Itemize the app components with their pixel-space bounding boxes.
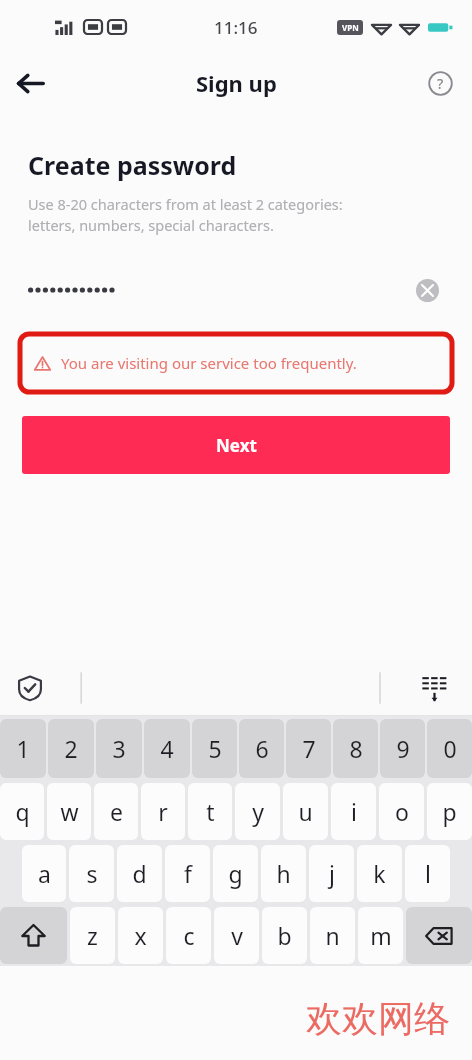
button[interactable]: s [69, 845, 114, 902]
staticText: w [60, 796, 79, 827]
button[interactable]: 4 [144, 719, 190, 778]
button[interactable]: v [214, 907, 259, 964]
staticText: VPN [342, 22, 359, 33]
button[interactable]: Next [22, 416, 450, 474]
staticText: 5 [208, 733, 222, 764]
button[interactable]: u [283, 783, 328, 840]
staticText: 1 [16, 733, 30, 764]
button[interactable]: Secure input [8, 666, 52, 710]
staticText: u [298, 796, 313, 827]
staticText: t [206, 796, 215, 827]
staticText: f [184, 858, 192, 889]
staticText: ? [437, 74, 444, 93]
button[interactable]: n [310, 907, 355, 964]
button[interactable]: d [117, 845, 162, 902]
button[interactable]: g [213, 845, 258, 902]
staticText: h [276, 858, 291, 889]
button[interactable]: i [331, 783, 376, 840]
staticText: k [373, 858, 386, 889]
button[interactable]: k [357, 845, 402, 902]
button[interactable]: l [405, 845, 450, 902]
staticText: m [370, 920, 392, 951]
staticText: 9 [396, 733, 410, 764]
staticText: 6 [255, 733, 269, 764]
staticText: o [395, 796, 409, 827]
staticText: d [132, 858, 147, 889]
staticText: a [38, 858, 51, 889]
staticText: b [277, 920, 292, 951]
staticText: 4 [160, 733, 174, 764]
staticText: n [325, 920, 340, 951]
button[interactable]: 3 [96, 719, 142, 778]
button[interactable]: 0 [427, 719, 472, 778]
button[interactable]: Back [6, 59, 54, 107]
button[interactable]: 6 [239, 719, 284, 778]
button[interactable]: h [261, 845, 306, 902]
button[interactable]: z [70, 907, 115, 964]
staticText: Use 8-20 characters from at least 2 cate… [28, 194, 343, 236]
button[interactable]: t [188, 783, 232, 840]
staticText: Sign up [196, 68, 277, 98]
staticText: 8 [349, 733, 363, 764]
button[interactable]: p [427, 783, 472, 840]
button[interactable]: o [379, 783, 424, 840]
staticText: You are visiting our service too frequen… [61, 353, 357, 373]
button[interactable]: f [165, 845, 210, 902]
staticText: v [231, 920, 243, 951]
button[interactable]: 9 [380, 719, 425, 778]
staticText: j [329, 858, 335, 889]
staticText: Create password [28, 148, 237, 182]
button[interactable]: 5 [192, 719, 237, 778]
staticText: 7 [302, 733, 316, 764]
button[interactable]: e [94, 783, 138, 840]
staticText: l [425, 858, 431, 889]
staticText: 0 [443, 733, 457, 764]
button[interactable]: Shift [0, 907, 67, 964]
button[interactable]: r [141, 783, 185, 840]
button[interactable]: w [47, 783, 91, 840]
staticText: i [351, 796, 357, 827]
button[interactable]: j [309, 845, 354, 902]
staticText: z [87, 920, 98, 951]
staticText: e [110, 796, 123, 827]
button[interactable]: 7 [286, 719, 331, 778]
staticText: y [252, 796, 264, 827]
staticText: r [158, 796, 168, 827]
button[interactable]: x [118, 907, 163, 964]
staticText: c [183, 920, 195, 951]
button[interactable]: 8 [333, 719, 378, 778]
button[interactable]: b [262, 907, 307, 964]
button[interactable]: 2 [48, 719, 94, 778]
staticText: 欢欢网络 [306, 996, 450, 1041]
button[interactable]: Clear [408, 271, 446, 309]
staticText: 3 [112, 733, 126, 764]
button[interactable]: Backspace [406, 907, 472, 964]
staticText: q [15, 796, 30, 827]
button[interactable]: Hide keyboard [412, 666, 456, 710]
staticText: x [134, 920, 147, 951]
staticText: g [228, 858, 243, 889]
staticText: s [86, 858, 98, 889]
button[interactable]: c [166, 907, 211, 964]
button[interactable]: Help [418, 61, 462, 105]
button[interactable]: 1 [0, 719, 46, 778]
button[interactable]: y [235, 783, 280, 840]
staticText: Next [216, 434, 257, 457]
button[interactable]: q [0, 783, 44, 840]
staticText: p [442, 796, 457, 827]
staticText: 2 [64, 733, 78, 764]
button[interactable]: m [358, 907, 403, 964]
staticText: 11:16 [214, 16, 258, 39]
button[interactable]: a [22, 845, 66, 902]
